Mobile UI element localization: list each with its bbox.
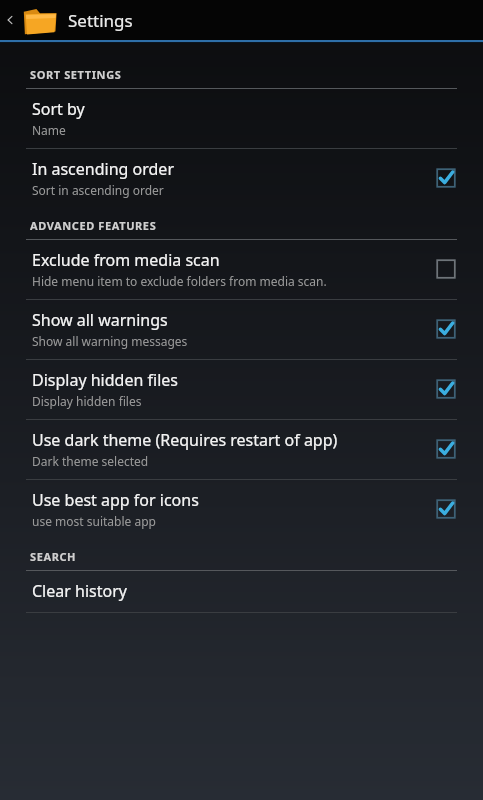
staticText: Show all warning messages (32, 333, 188, 349)
other: Checked (435, 378, 457, 400)
staticText: SEARCH (30, 549, 77, 564)
staticText: Dark theme selected (32, 453, 149, 469)
button[interactable]: Sort by (0, 89, 483, 148)
button[interactable]: In ascending order (0, 149, 483, 208)
button[interactable]: Use dark theme (Requires restart of app) (0, 420, 483, 479)
button[interactable]: Use best app for icons (0, 480, 483, 539)
other: Checked (435, 167, 457, 189)
staticText: Settings (68, 9, 133, 32)
staticText: ADVANCED FEATURES (30, 218, 157, 233)
staticText: Use best app for icons (32, 489, 199, 511)
staticText: Show all warnings (32, 309, 168, 331)
staticText: Display hidden files (32, 393, 142, 409)
button[interactable]: Exclude from media scan (0, 240, 483, 299)
button[interactable]: Back (0, 0, 20, 40)
staticText: Clear history (32, 580, 127, 602)
staticText: Name (32, 122, 66, 138)
staticText: use most suitable app (32, 513, 156, 529)
button[interactable]: Show all warnings (0, 300, 483, 359)
staticText: Exclude from media scan (32, 249, 220, 271)
staticText: Display hidden files (32, 369, 178, 391)
other: Checked (435, 318, 457, 340)
staticText: Sort in ascending order (32, 182, 164, 198)
staticText: Use dark theme (Requires restart of app) (32, 429, 338, 451)
staticText: SORT SETTINGS (30, 67, 122, 82)
other: Checked (435, 438, 457, 460)
button[interactable]: Clear history (0, 571, 483, 612)
staticText: Sort by (32, 98, 85, 120)
other: Checked (435, 498, 457, 520)
staticText: In ascending order (32, 158, 175, 180)
button[interactable]: Display hidden files (0, 360, 483, 419)
staticText: Hide menu item to exclude folders from m… (32, 273, 327, 289)
other: Unchecked (435, 258, 457, 280)
